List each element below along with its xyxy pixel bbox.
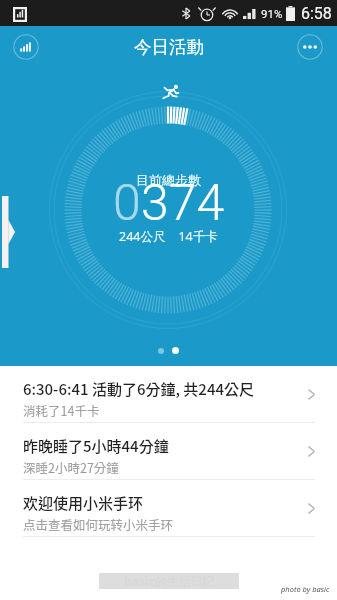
staticText: 374: [141, 174, 225, 233]
button[interactable]: Open drawer: [2, 196, 11, 268]
button[interactable]: 昨晚睡了5小時44分鐘: [0, 423, 337, 480]
staticText: 6:30-6:41 活動了6分鐘, 共244公尺: [23, 378, 255, 400]
staticText: 91%: [261, 7, 283, 20]
button[interactable]: 欢迎使用小米手环: [0, 480, 337, 537]
staticText: photo by basic: [281, 584, 330, 594]
staticText: 目前總步數: [136, 172, 201, 188]
button[interactable]: 6:30-6:41 活動了6分鐘, 共244公尺: [0, 366, 337, 423]
staticText: 深睡2小時27分鐘: [23, 458, 119, 476]
staticText: 点击查看如何玩转小米手环: [23, 515, 174, 533]
staticText: 昨晚睡了5小時44分鐘: [23, 435, 169, 457]
staticText: 6:58: [301, 4, 332, 23]
staticText: 0: [113, 174, 141, 233]
staticText: 今日活動: [134, 36, 204, 58]
staticText: 消耗了14千卡: [23, 401, 100, 419]
staticText: 244公尺 14千卡: [119, 228, 218, 245]
button[interactable]: More options: [297, 34, 323, 60]
staticText: 欢迎使用小米手环: [23, 492, 144, 514]
button[interactable]: Statistics: [13, 34, 39, 60]
